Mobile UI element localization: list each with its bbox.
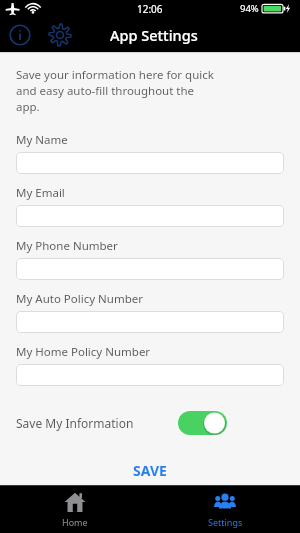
button[interactable]: Settings: [150, 486, 300, 533]
button[interactable]: Settings: [48, 23, 72, 47]
staticText: My Home Policy Number: [16, 344, 151, 360]
button[interactable]: [16, 152, 284, 174]
staticText: Save My Information: [16, 415, 134, 431]
button[interactable]: [16, 205, 284, 227]
staticText: My Email: [16, 185, 65, 201]
button[interactable]: Home: [0, 486, 150, 533]
button[interactable]: [16, 311, 284, 333]
button[interactable]: Information: [9, 24, 31, 46]
staticText: Home: [62, 516, 88, 528]
button[interactable]: SAVE: [0, 457, 300, 483]
staticText: Settings: [208, 516, 243, 528]
staticText: My Phone Number: [16, 238, 118, 254]
button[interactable]: Save My Information toggle: [178, 411, 227, 435]
staticText: My Name: [16, 132, 68, 148]
staticText: 94%: [240, 2, 259, 15]
staticText: SAVE: [133, 461, 167, 480]
button[interactable]: [16, 364, 284, 386]
staticText: My Auto Policy Number: [16, 291, 143, 307]
button[interactable]: [16, 258, 284, 280]
staticText: App Settings: [110, 25, 198, 45]
staticText: 12:06: [137, 2, 163, 16]
staticText: Save your information here for quick and…: [16, 67, 214, 115]
